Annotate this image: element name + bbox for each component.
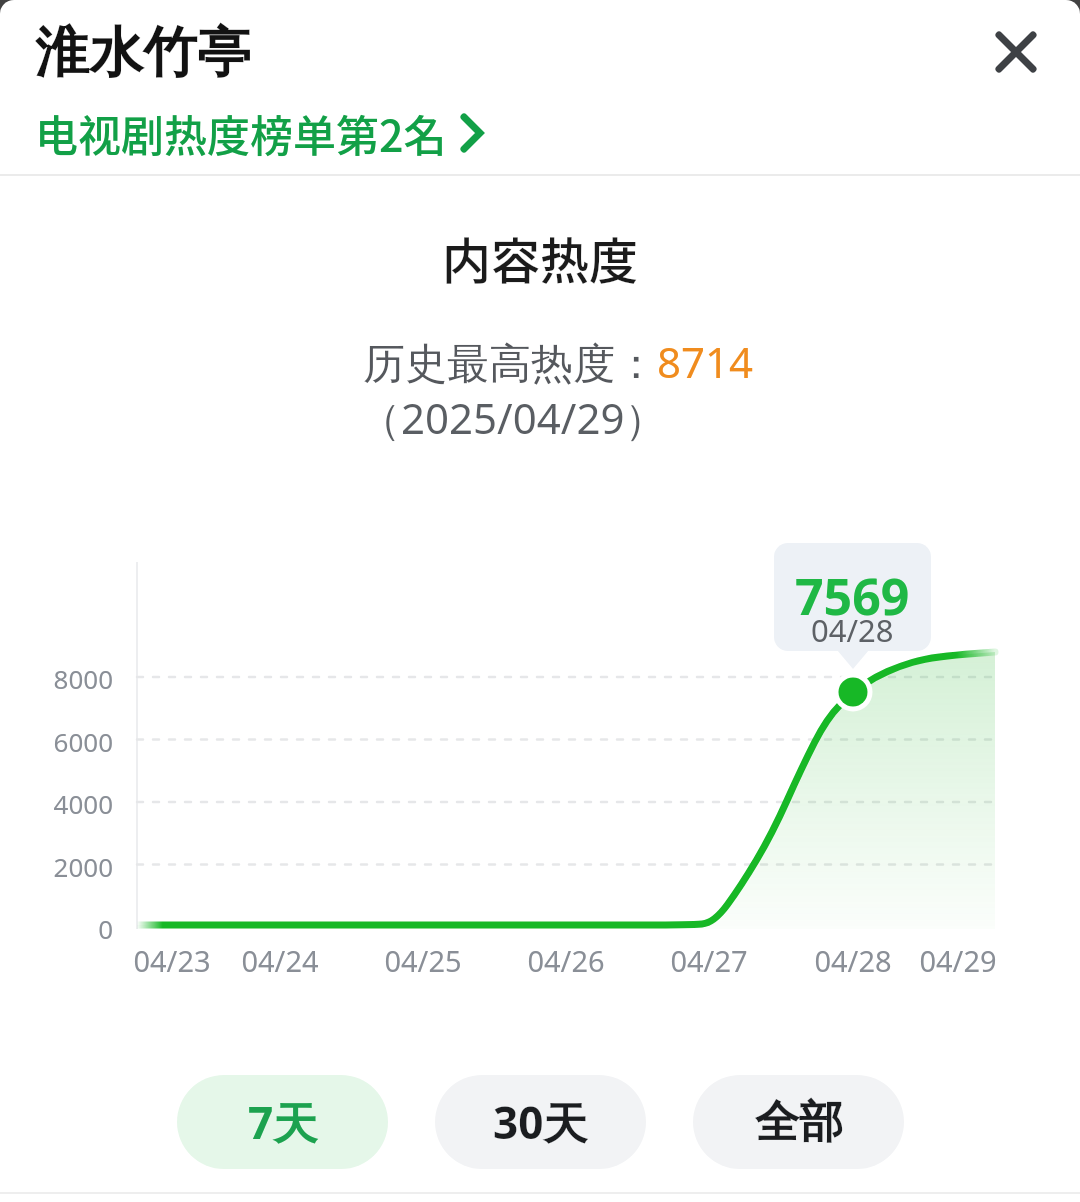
staticText: 6000 [23, 724, 113, 759]
staticText: 04/27 [649, 941, 769, 980]
staticText: （2025/04/29） [359, 389, 667, 446]
button[interactable]: 7天 [177, 1075, 388, 1169]
staticText: 04/24 [220, 941, 340, 980]
staticText: 30天 [493, 1092, 588, 1152]
staticText: 全部 [755, 1095, 843, 1150]
staticText: 淮水竹亭 [35, 19, 251, 87]
staticText: 内容热度 [442, 222, 639, 293]
staticText: 0 [23, 911, 113, 946]
staticText: 7天 [248, 1092, 318, 1152]
staticText: 7569 [795, 562, 910, 630]
staticText: 04/28 [811, 609, 894, 651]
staticText: 04/29 [898, 941, 1018, 980]
staticText: 历史最高热度：8714 [363, 333, 754, 390]
staticText: 04/28 [793, 941, 913, 980]
staticText: 2000 [23, 849, 113, 884]
staticText: 4000 [23, 786, 113, 821]
staticText: 电视剧热度榜单第2名 [35, 102, 447, 164]
button[interactable]: 30天 [435, 1075, 646, 1169]
button[interactable] [976, 12, 1056, 92]
staticText: 04/26 [506, 941, 626, 980]
staticText: 04/25 [363, 941, 483, 980]
button[interactable]: 全部 [693, 1075, 904, 1169]
staticText: 8000 [23, 661, 113, 696]
button[interactable]: 电视剧热度榜单第2名 [35, 102, 485, 164]
staticText: 04/23 [112, 941, 232, 980]
